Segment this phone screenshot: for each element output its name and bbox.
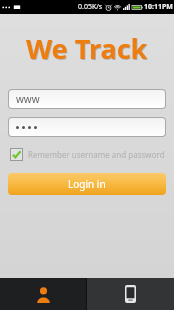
staticText: We Track: [26, 30, 148, 67]
button[interactable]: Devices: [87, 278, 174, 310]
button[interactable]: Account: [0, 278, 86, 310]
button[interactable]: [9, 118, 165, 136]
staticText: Login in: [68, 177, 106, 191]
staticText: 10:11PM: [144, 2, 173, 12]
staticText: www: [16, 92, 40, 106]
staticText: 0.05K/s: [78, 2, 103, 12]
button[interactable]: Login in: [8, 173, 166, 195]
button[interactable]: Remember username and password: [9, 146, 166, 163]
staticText: We Track: [27, 31, 149, 68]
button[interactable]: www: [9, 90, 165, 108]
staticText: Remember username and password: [28, 149, 165, 160]
